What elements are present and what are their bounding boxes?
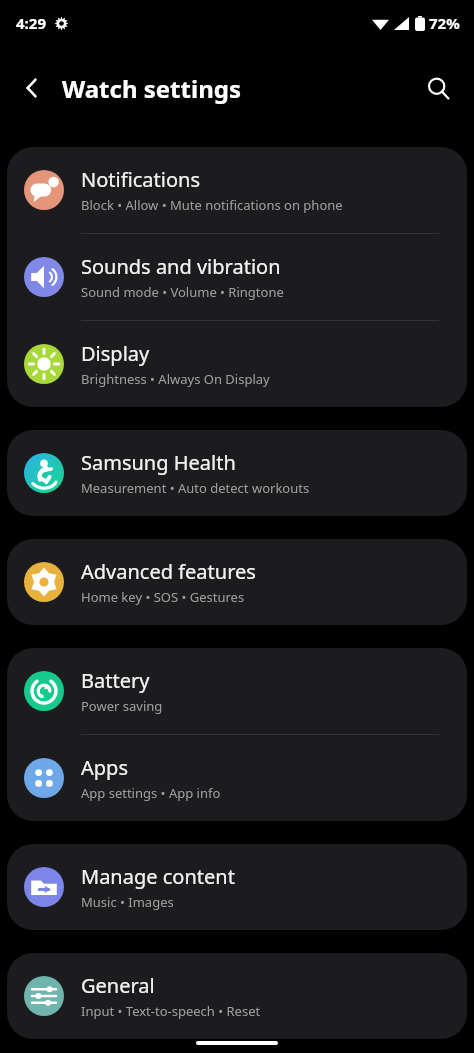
- staticText: Watch settings: [62, 72, 241, 105]
- button[interactable]: Search: [416, 66, 460, 110]
- staticText: Apps: [81, 754, 128, 781]
- staticText: Block • Allow • Mute notifications on ph…: [81, 196, 343, 214]
- staticText: 4:29: [16, 13, 46, 33]
- staticText: Manage content: [81, 863, 235, 890]
- button[interactable]: Notifications: [7, 147, 467, 233]
- button[interactable]: Apps: [7, 735, 467, 821]
- staticText: Home key • SOS • Gestures: [81, 588, 245, 606]
- button[interactable]: Display: [7, 321, 467, 407]
- button[interactable]: Back: [10, 66, 54, 110]
- button[interactable]: Manage content: [7, 844, 467, 930]
- staticText: 72%: [429, 13, 460, 33]
- staticText: Measurement • Auto detect workouts: [81, 479, 310, 497]
- staticText: Power saving: [81, 697, 163, 715]
- button[interactable]: Samsung Health: [7, 430, 467, 516]
- staticText: General: [81, 972, 155, 999]
- button[interactable]: Advanced features: [7, 539, 467, 625]
- button[interactable]: General: [7, 953, 467, 1039]
- staticText: Advanced features: [81, 558, 256, 585]
- button[interactable]: Sounds and vibration: [7, 234, 467, 320]
- staticText: Brightness • Always On Display: [81, 370, 270, 388]
- staticText: Music • Images: [81, 893, 174, 911]
- staticText: Battery: [81, 667, 150, 694]
- staticText: App settings • App info: [81, 784, 221, 802]
- staticText: Display: [81, 340, 150, 367]
- button[interactable]: Battery: [7, 648, 467, 734]
- staticText: Samsung Health: [81, 449, 236, 476]
- staticText: Sound mode • Volume • Ringtone: [81, 283, 284, 301]
- staticText: Notifications: [81, 166, 200, 193]
- staticText: Input • Text-to-speech • Reset: [81, 1002, 261, 1020]
- staticText: Sounds and vibration: [81, 253, 281, 280]
